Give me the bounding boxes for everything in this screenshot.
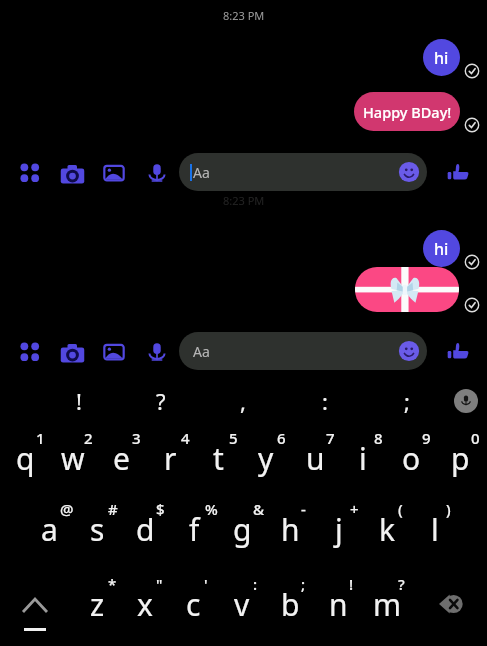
- staticText: q: [16, 438, 35, 479]
- button[interactable]: Emoji: [398, 161, 420, 183]
- button[interactable]: More options: [19, 341, 40, 362]
- staticText: #: [108, 499, 118, 519]
- button[interactable]: Gallery: [103, 162, 125, 184]
- staticText: Aa: [193, 342, 210, 361]
- button[interactable]: 0: [436, 432, 484, 484]
- staticText: 0: [471, 428, 480, 448]
- staticText: p: [451, 438, 470, 479]
- button[interactable]: 1: [1, 432, 49, 484]
- staticText: 8:23 PM: [223, 8, 265, 23]
- button[interactable]: 6: [242, 432, 290, 484]
- button[interactable]: hi: [423, 39, 460, 76]
- staticText: t: [213, 438, 224, 479]
- button[interactable]: +: [315, 503, 363, 555]
- staticText: 3: [132, 428, 141, 448]
- staticText: w: [61, 438, 85, 479]
- staticText: ?: [156, 386, 166, 414]
- button[interactable]: ;: [266, 578, 314, 630]
- staticText: ): [446, 499, 451, 519]
- button[interactable]: 5: [194, 432, 242, 484]
- button[interactable]: $: [121, 503, 169, 555]
- staticText: ': [204, 574, 208, 594]
- staticText: z: [90, 584, 105, 625]
- staticText: y: [258, 438, 274, 479]
- button[interactable]: Emoji: [398, 340, 420, 362]
- staticText: 9: [422, 428, 431, 448]
- staticText: j: [335, 509, 343, 550]
- button[interactable]: More options: [19, 162, 40, 183]
- button[interactable]: Camera: [60, 161, 85, 186]
- button[interactable]: ): [411, 503, 459, 555]
- button[interactable]: 9: [387, 432, 435, 484]
- staticText: hi: [434, 47, 449, 69]
- button[interactable]: Voice input: [454, 389, 478, 413]
- staticText: 6: [277, 428, 286, 448]
- button[interactable]: Backspace: [427, 581, 475, 627]
- staticText: h: [281, 509, 300, 550]
- button[interactable]: Voice message: [145, 161, 169, 185]
- button[interactable]: ?: [141, 386, 181, 414]
- staticText: s: [90, 509, 105, 550]
- button[interactable]: hi: [423, 230, 460, 267]
- button[interactable]: Voice message: [145, 340, 169, 364]
- staticText: Aa: [193, 163, 210, 182]
- button[interactable]: 8: [339, 432, 387, 484]
- staticText: @: [60, 499, 74, 519]
- button[interactable]: -: [266, 503, 314, 555]
- button[interactable]: 7: [291, 432, 339, 484]
- staticText: b: [281, 584, 300, 625]
- button[interactable]: [355, 267, 459, 312]
- staticText: 8: [374, 428, 383, 448]
- button[interactable]: Send a like: [446, 339, 470, 363]
- staticText: e: [113, 438, 130, 479]
- button[interactable]: ": [121, 578, 169, 630]
- button[interactable]: &: [218, 503, 266, 555]
- staticText: -: [301, 499, 306, 519]
- button[interactable]: %: [170, 503, 218, 555]
- staticText: 8:23 PM: [223, 193, 265, 208]
- staticText: ": [156, 574, 163, 594]
- button[interactable]: !: [314, 578, 362, 630]
- staticText: ;: [404, 386, 410, 414]
- staticText: Happy BDay!: [363, 102, 452, 122]
- button[interactable]: (: [363, 503, 411, 555]
- staticText: v: [234, 584, 250, 625]
- button[interactable]: Shift: [8, 589, 62, 635]
- button[interactable]: ': [169, 578, 217, 630]
- button[interactable]: ;: [387, 386, 427, 414]
- button[interactable]: !: [59, 386, 99, 414]
- staticText: 5: [229, 428, 238, 448]
- button[interactable]: :: [305, 386, 345, 414]
- button[interactable]: Gallery: [103, 341, 125, 363]
- staticText: 4: [181, 428, 190, 448]
- button[interactable]: Send a like: [446, 160, 470, 184]
- button[interactable]: ,: [223, 386, 263, 414]
- staticText: r: [164, 438, 177, 479]
- button[interactable]: #: [73, 503, 121, 555]
- staticText: 2: [84, 428, 93, 448]
- button[interactable]: Camera: [60, 340, 85, 365]
- staticText: u: [306, 438, 325, 479]
- button[interactable]: @: [25, 503, 73, 555]
- staticText: 7: [326, 428, 335, 448]
- button[interactable]: *: [73, 578, 121, 630]
- button[interactable]: ?: [363, 578, 411, 630]
- button[interactable]: :: [218, 578, 266, 630]
- button[interactable]: Aa: [179, 332, 427, 370]
- staticText: g: [233, 509, 252, 550]
- staticText: k: [379, 509, 396, 550]
- button[interactable]: 2: [49, 432, 97, 484]
- button[interactable]: 4: [146, 432, 194, 484]
- staticText: ;: [301, 574, 306, 594]
- staticText: !: [76, 386, 82, 414]
- staticText: a: [41, 509, 58, 550]
- staticText: x: [137, 584, 153, 625]
- staticText: f: [189, 509, 200, 550]
- staticText: l: [431, 509, 439, 550]
- staticText: :: [253, 574, 258, 594]
- button[interactable]: Aa: [179, 153, 427, 191]
- staticText: :: [322, 386, 328, 414]
- staticText: 1: [36, 428, 45, 448]
- button[interactable]: 3: [97, 432, 145, 484]
- button[interactable]: Happy BDay!: [354, 92, 460, 131]
